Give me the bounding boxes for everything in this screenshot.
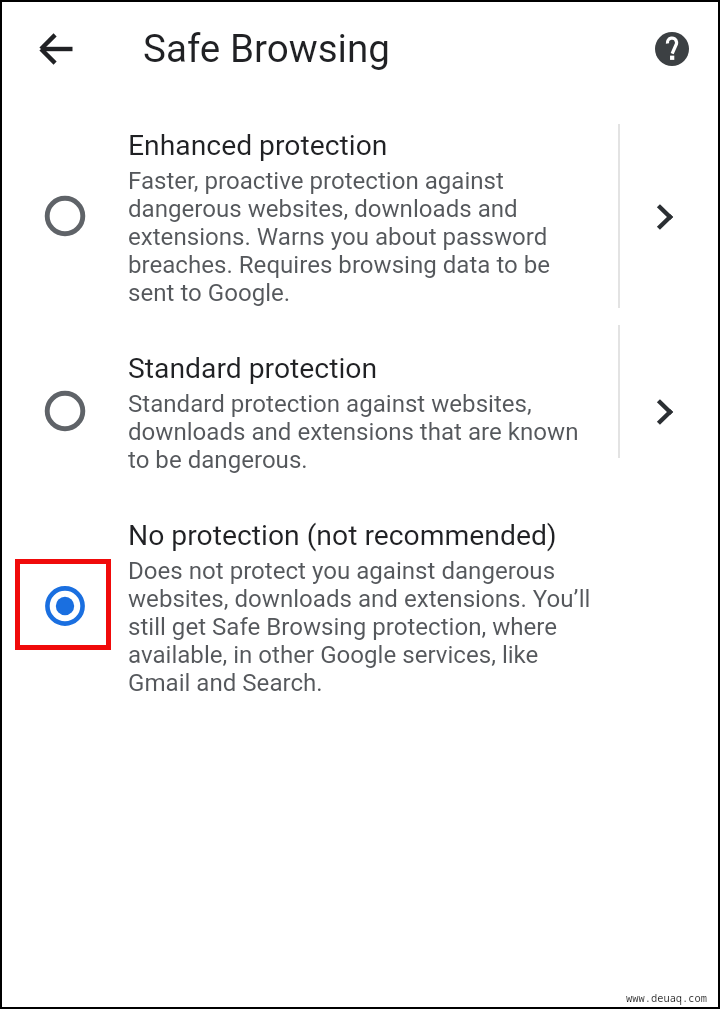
button[interactable]: Enhanced protection settings — [640, 192, 689, 241]
staticText: No protection (not recommended) — [128, 519, 557, 552]
button[interactable] — [2, 490, 718, 705]
staticText: www.deuaq.com — [626, 991, 708, 1005]
staticText: Standard protection — [128, 352, 378, 385]
button[interactable]: Standard protection — [44, 390, 86, 432]
button[interactable] — [2, 321, 718, 461]
button[interactable]: Enhanced protection — [128, 129, 596, 307]
staticText: Enhanced protection — [128, 129, 388, 162]
staticText: Standard protection against websites, do… — [128, 390, 596, 474]
staticText: Faster, proactive protection against dan… — [128, 167, 596, 307]
button[interactable]: Standard protection — [128, 352, 596, 474]
staticText: Does not protect you against dangerous w… — [128, 557, 596, 697]
button[interactable]: No protection (not recommended) — [44, 585, 86, 627]
button[interactable]: Standard protection settings — [640, 387, 689, 436]
button[interactable] — [2, 99, 718, 311]
staticText: Safe Browsing — [143, 26, 390, 71]
button[interactable]: Enhanced protection — [44, 195, 86, 237]
button[interactable]: No protection (not recommended) — [128, 519, 596, 697]
button[interactable]: Navigate up — [9, 1, 105, 97]
button[interactable]: Help and feedback — [624, 1, 720, 97]
